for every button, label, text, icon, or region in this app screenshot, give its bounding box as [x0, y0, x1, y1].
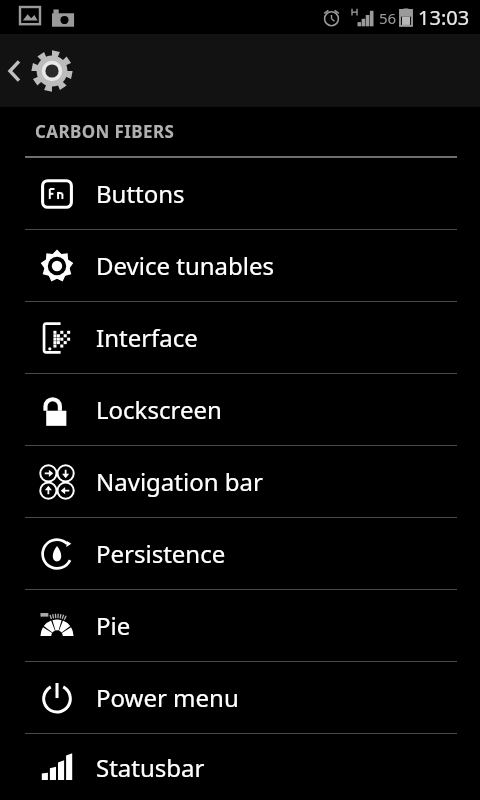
button[interactable]: Navigate up: [0, 34, 92, 107]
staticText: Navigation bar: [96, 465, 263, 498]
staticText: Persistence: [96, 537, 226, 570]
button[interactable]: Navigation bar: [0, 446, 480, 517]
button[interactable]: Power menu: [0, 662, 480, 733]
staticText: Buttons: [96, 177, 185, 210]
staticText: Power menu: [96, 681, 239, 714]
button[interactable]: Lockscreen: [0, 374, 480, 445]
staticText: Lockscreen: [96, 393, 222, 426]
button[interactable]: Pie: [0, 590, 480, 661]
button[interactable]: Buttons: [0, 158, 480, 229]
staticText: Device tunables: [96, 249, 275, 282]
button[interactable]: Interface: [0, 302, 480, 373]
staticText: 56: [379, 8, 397, 28]
staticText: CARBON FIBERS: [35, 120, 175, 143]
staticText: Interface: [96, 321, 198, 354]
button[interactable]: Persistence: [0, 518, 480, 589]
button[interactable]: Statusbar: [0, 734, 480, 800]
staticText: Statusbar: [96, 751, 205, 784]
staticText: 13:03: [418, 4, 470, 31]
button[interactable]: Device tunables: [0, 230, 480, 301]
staticText: Pie: [96, 609, 131, 642]
